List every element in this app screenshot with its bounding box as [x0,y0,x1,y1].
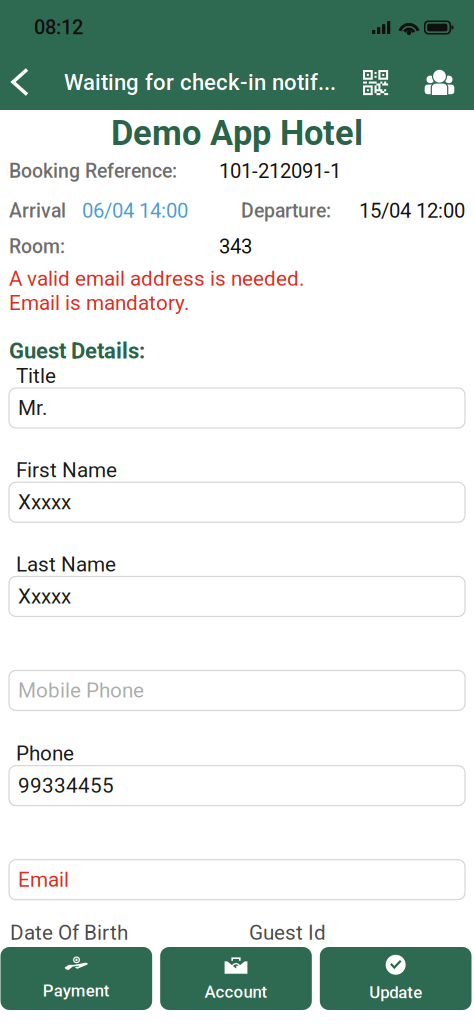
button[interactable]: Account [160,947,312,1010]
staticText: Guest Details: [9,338,145,364]
staticText: Room: [9,235,65,258]
button[interactable]: Scan QR code [336,55,415,110]
staticText: Mr. [18,396,47,420]
staticText: Xxxxx [18,584,71,608]
staticText: Phone [16,741,74,766]
staticText: Xxxxx [18,490,71,514]
staticText: 06/04 14:00 [82,199,188,223]
staticText: Mobile Phone [18,678,144,702]
staticText: Waiting for check-in notif... [64,69,336,95]
staticText: 343 [219,235,252,259]
staticText: Guest Id [249,921,326,945]
staticText: Date Of Birth [10,921,128,945]
staticText: Booking Reference: [9,160,177,183]
staticText: Last Name [16,552,116,576]
button[interactable]: Payment [0,947,152,1010]
button[interactable]: Back [0,55,41,110]
button[interactable]: Guests [415,55,464,110]
staticText: Payment [43,981,110,1001]
staticText: 08:12 [34,16,83,39]
staticText: 15/04 12:00 [359,199,465,223]
staticText: First Name [16,458,117,482]
staticText: Title [16,364,56,388]
staticText: Departure: [241,199,331,222]
staticText: 101-212091-1 [219,159,341,183]
staticText: Arrival [9,199,66,222]
button[interactable]: Update [320,947,471,1010]
staticText: Email [18,868,69,892]
staticText: Email is mandatory. [9,291,189,315]
staticText: 99334455 [18,774,114,798]
staticText: Demo App Hotel [111,113,363,153]
staticText: Account [204,982,267,1002]
staticText: Update [369,982,422,1002]
staticText: A valid email address is needed. [9,267,304,291]
